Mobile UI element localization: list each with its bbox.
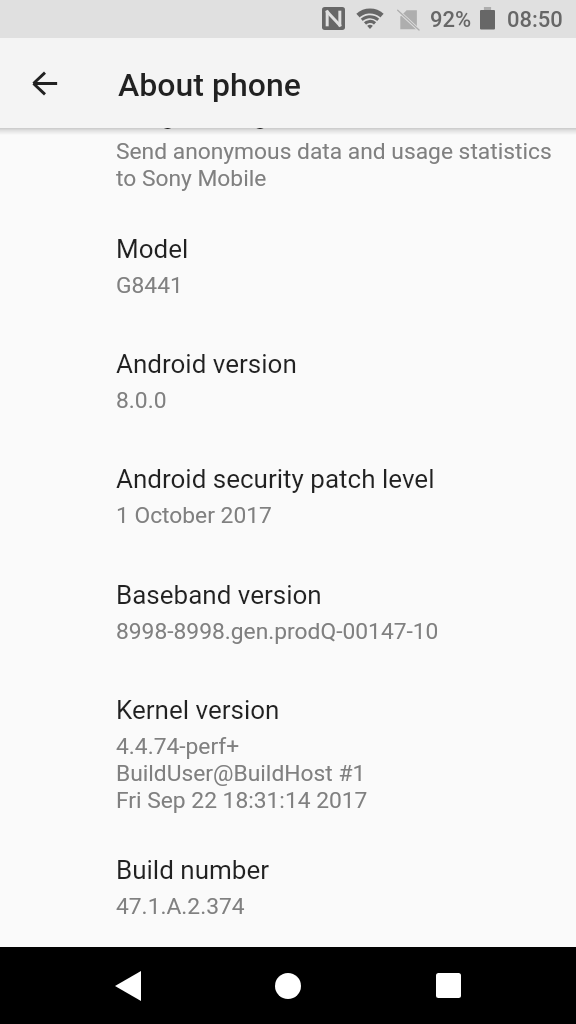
staticText: G8441: [116, 272, 183, 299]
staticText: Kernel version: [116, 695, 280, 725]
staticText: 92%: [430, 7, 472, 33]
staticText: 47.1.A.2.374: [116, 893, 245, 920]
staticText: Baseband version: [116, 580, 322, 610]
staticText: 4.4.74-perf+ BuildUser@BuildHost #1 Fri …: [116, 733, 368, 814]
button[interactable]: [0, 562, 576, 677]
button[interactable]: Navigate up: [20, 58, 70, 108]
button[interactable]: Home: [250, 947, 326, 1024]
staticText: Usage & diagnostics: [116, 100, 353, 130]
staticText: 1 October 2017: [116, 502, 272, 529]
button[interactable]: [0, 446, 576, 562]
staticText: 8998-8998.gen.prodQ-00147-10: [116, 618, 439, 645]
button[interactable]: [0, 128, 576, 216]
button[interactable]: [0, 837, 576, 947]
staticText: Android security patch level: [116, 464, 435, 494]
staticText: Build number: [116, 855, 269, 885]
button[interactable]: Recent apps: [410, 947, 486, 1024]
button[interactable]: Back: [90, 947, 166, 1024]
button[interactable]: [0, 216, 576, 331]
button[interactable]: [0, 677, 576, 837]
button[interactable]: [0, 331, 576, 446]
staticText: Android version: [116, 349, 297, 379]
staticText: 8.0.0: [116, 387, 167, 414]
staticText: Model: [116, 234, 189, 264]
staticText: 08:50: [507, 7, 563, 33]
staticText: About phone: [118, 66, 301, 104]
staticText: Send anonymous data and usage statistics…: [116, 138, 552, 192]
